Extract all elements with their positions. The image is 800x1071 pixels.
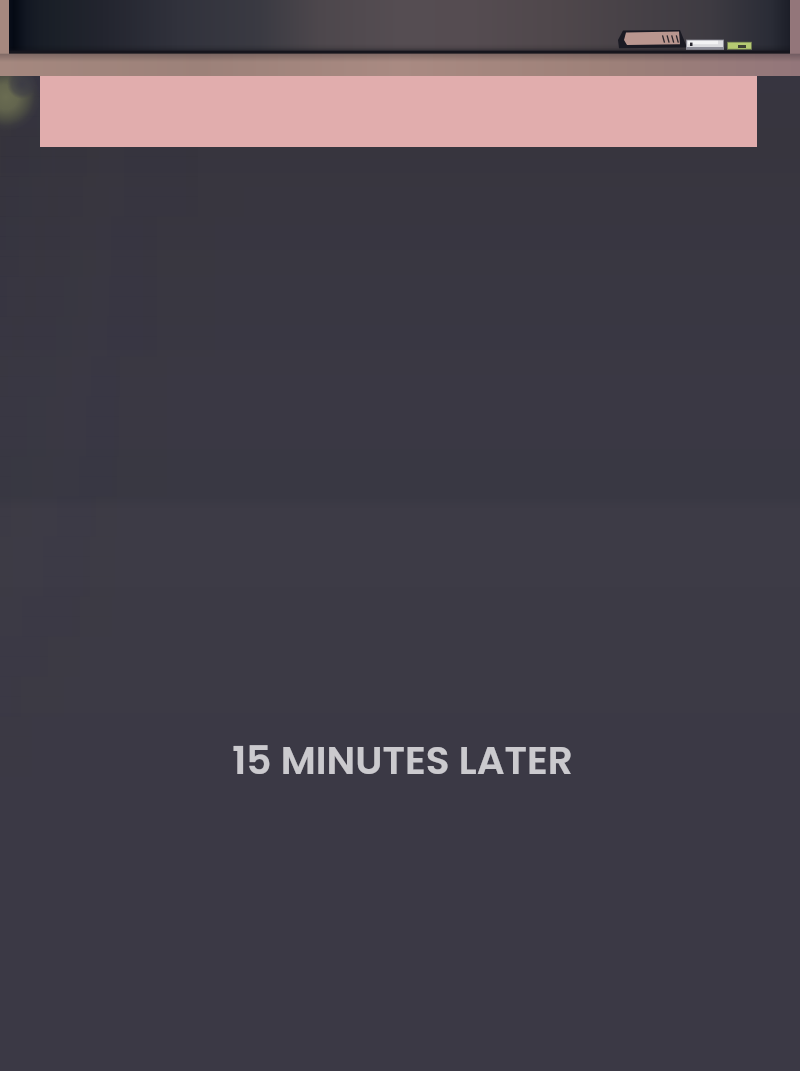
button[interactable]: 15 MINUTES LATER	[232, 733, 573, 788]
staticText: 15 MINUTES LATER	[232, 733, 573, 788]
